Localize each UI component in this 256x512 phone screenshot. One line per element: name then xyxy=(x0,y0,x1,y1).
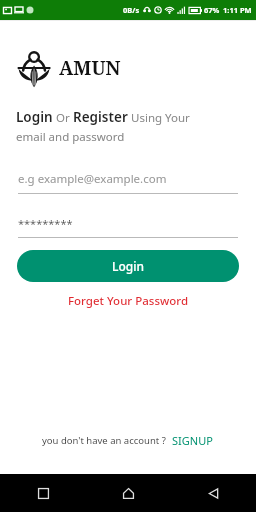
staticText: 67% xyxy=(204,5,220,15)
button[interactable]: ********* xyxy=(18,216,238,238)
button[interactable]: Login xyxy=(17,250,239,282)
staticText: AMUN xyxy=(59,55,121,81)
button[interactable]: SIGNUP xyxy=(170,431,215,450)
staticText: you don't have an account ? xyxy=(42,434,166,447)
button[interactable]: e.g example@example.com xyxy=(18,171,238,194)
staticText: Or xyxy=(56,110,70,126)
staticText: e.g example@example.com xyxy=(18,171,167,187)
button[interactable]: Back xyxy=(171,474,256,512)
staticText: SIGNUP xyxy=(172,433,213,448)
staticText: ********* xyxy=(18,216,73,231)
staticText: 1:11 PM xyxy=(223,5,252,15)
button[interactable]: Forget Your Password xyxy=(60,290,197,312)
button[interactable]: Recents xyxy=(0,474,86,512)
staticText: Login xyxy=(112,258,144,274)
button[interactable]: Home xyxy=(86,474,171,512)
staticText: Login xyxy=(16,108,53,126)
staticText: email and password xyxy=(16,129,125,145)
staticText: Register xyxy=(73,108,128,126)
staticText: 0B/s xyxy=(123,5,140,15)
staticText: Forget Your Password xyxy=(68,293,189,309)
staticText: Using Your xyxy=(131,110,190,126)
